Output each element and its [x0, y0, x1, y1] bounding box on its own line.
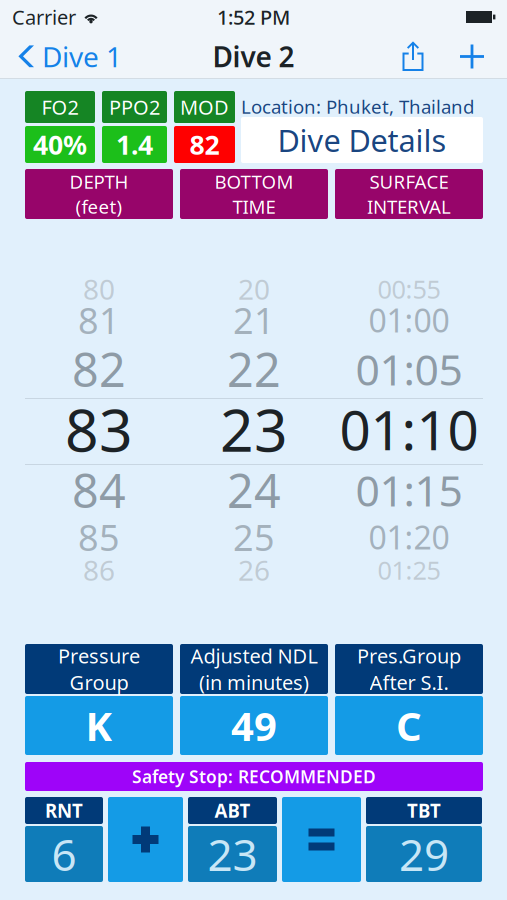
staticText: (in minutes): [199, 669, 309, 696]
button[interactable]: Pres.Group: [335, 644, 483, 755]
button[interactable]: RNT: [25, 797, 103, 882]
staticText: 01:05: [355, 341, 462, 397]
staticText: Adjusted NDL: [190, 642, 317, 669]
staticText: BOTTOM: [214, 169, 293, 194]
staticText: 20: [238, 270, 270, 308]
staticText: Safety Stop: RECOMMENDED: [132, 765, 376, 788]
staticText: 25: [233, 513, 275, 561]
staticText: ABT: [214, 798, 250, 823]
button[interactable]: Adjusted NDL: [180, 644, 328, 755]
staticText: 85: [78, 513, 120, 561]
button[interactable]: Plus: [108, 797, 183, 882]
staticText: 01:15: [355, 462, 462, 518]
staticText: Dive 2: [212, 38, 294, 75]
staticText: 23: [220, 390, 288, 468]
staticText: 1.4: [116, 127, 153, 162]
staticText: Dive 1: [42, 38, 122, 75]
button[interactable]: ABT: [188, 797, 277, 882]
button[interactable]: Pressure: [25, 644, 173, 755]
staticText: 21: [233, 296, 275, 344]
button[interactable]: Dive 1: [0, 34, 134, 79]
staticText: 86: [83, 551, 115, 589]
staticText: 6: [51, 825, 76, 883]
staticText: (feet): [75, 194, 122, 219]
staticText: TIME: [232, 194, 275, 219]
staticText: 29: [399, 825, 449, 883]
staticText: MOD: [180, 94, 229, 120]
button[interactable]: Share: [391, 34, 435, 79]
staticText: 01:25: [377, 553, 440, 587]
staticText: Location: Phuket, Thailand: [241, 94, 474, 119]
staticText: Group: [69, 669, 128, 696]
staticText: 40%: [33, 127, 87, 162]
staticText: 26: [238, 551, 270, 589]
staticText: 23: [207, 825, 257, 883]
staticText: After S.I.: [369, 669, 448, 696]
staticText: PPO2: [109, 94, 160, 120]
staticText: 1:52 PM: [217, 4, 290, 30]
staticText: 01:00: [368, 299, 449, 341]
staticText: 22: [227, 338, 281, 400]
staticText: 01:20: [368, 516, 449, 558]
staticText: DEPTH: [69, 169, 128, 194]
staticText: 24: [227, 459, 281, 521]
staticText: Carrier: [12, 4, 76, 30]
staticText: TBT: [407, 798, 441, 823]
staticText: Pressure: [58, 642, 140, 669]
staticText: INTERVAL: [367, 194, 451, 219]
button[interactable]: TBT: [366, 797, 482, 882]
staticText: 82: [189, 127, 219, 162]
staticText: Dive Details: [277, 120, 446, 160]
button[interactable]: Dive Details: [241, 117, 483, 163]
staticText: 82: [72, 338, 126, 400]
staticText: RNT: [45, 798, 83, 823]
button[interactable]: Add dive: [450, 34, 494, 79]
staticText: Pres.Group: [357, 642, 461, 669]
staticText: SURFACE: [369, 169, 448, 194]
button[interactable]: Equals: [282, 797, 361, 882]
button[interactable]: Safety Stop: RECOMMENDED: [25, 762, 483, 791]
staticText: K: [85, 699, 112, 752]
staticText: 01:10: [339, 393, 478, 465]
staticText: 80: [83, 270, 115, 308]
staticText: FO2: [41, 94, 78, 120]
staticText: 83: [65, 390, 133, 468]
staticText: 00:55: [377, 272, 440, 306]
staticText: 81: [78, 296, 120, 344]
staticText: 49: [231, 699, 277, 752]
staticText: C: [396, 699, 422, 752]
staticText: 84: [72, 459, 126, 521]
